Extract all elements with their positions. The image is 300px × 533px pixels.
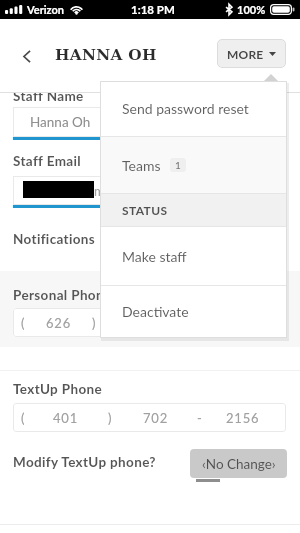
staticText: ( [21,410,26,426]
button[interactable]: Deactivate [100,286,287,337]
staticText: m [94,183,105,199]
staticText: Deactivate [122,303,189,320]
staticText: Notifications [13,231,96,247]
button[interactable]: Teams [100,137,287,193]
staticText: ) [92,315,97,331]
staticText: 401 [53,410,79,426]
staticText: Hanna Oh [30,114,91,130]
staticText: Personal Phone [13,287,112,303]
staticText: 2156 [226,410,260,426]
staticText: ) [108,410,113,426]
button[interactable]: ( [13,403,286,432]
staticText: Send password reset [122,100,249,117]
staticText: Make staff [122,248,187,265]
button[interactable]: ( [13,308,286,337]
button[interactable]: ‹No Change› [190,449,287,478]
staticText: Staff Email [13,153,81,169]
staticText: HANNA OH [55,46,157,64]
staticText: ( [21,315,26,331]
staticText: Teams [122,157,161,174]
staticText: - [197,410,203,426]
staticText: Modify TextUp phone? [13,454,156,470]
staticText: STATUS [122,203,168,217]
button[interactable]: Make staff [100,227,287,285]
staticText: MORE [227,47,264,61]
staticText: 702 [143,410,169,426]
staticText: TextUp Phone [13,381,103,397]
button[interactable]: Send password reset [100,81,287,136]
staticText: 1:18 PM [131,3,175,17]
staticText: ‹No Change› [202,456,276,472]
staticText: 1 [175,159,181,171]
staticText: 100% [237,3,266,16]
staticText: Verizon [27,3,65,16]
button[interactable]: MORE [217,39,286,68]
staticText: Staff Name [13,88,84,104]
button[interactable]: Back [19,47,35,65]
staticText: 626 [46,315,72,331]
